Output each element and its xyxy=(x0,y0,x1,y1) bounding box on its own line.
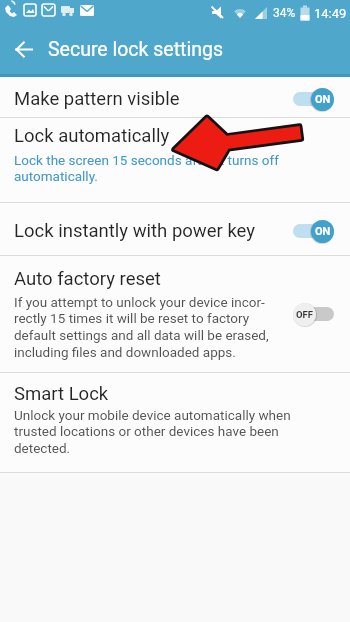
staticText: Auto factory reset xyxy=(14,268,161,290)
staticText: Make pattern visible xyxy=(14,88,180,110)
staticText: Lock automatically xyxy=(14,125,170,147)
staticText: Unlock your mobile device automatically … xyxy=(14,407,291,457)
button[interactable] xyxy=(0,26,48,73)
button[interactable]: Auto factory reset xyxy=(0,256,350,372)
staticText: 34% xyxy=(273,6,296,20)
staticText: Smart Lock xyxy=(14,383,109,405)
button[interactable]: OFF xyxy=(293,301,334,327)
button[interactable]: Make pattern visible xyxy=(0,77,350,117)
button[interactable]: ON xyxy=(293,218,334,244)
button[interactable]: Lock automatically xyxy=(0,118,350,202)
staticText: Secure lock settings xyxy=(48,38,223,61)
staticText: Lock instantly with power key xyxy=(14,220,256,242)
staticText: 14:49 xyxy=(314,6,347,21)
button[interactable]: Lock instantly with power key xyxy=(0,203,350,255)
button[interactable]: Smart Lock xyxy=(0,373,350,472)
button[interactable]: ON xyxy=(293,86,334,112)
staticText: If you attempt to unlock your device inc… xyxy=(14,294,269,361)
staticText: ON xyxy=(315,225,331,238)
staticText: Lock the screen 15 seconds after it turn… xyxy=(14,152,279,185)
staticText: ON xyxy=(315,93,331,106)
staticText: OFF xyxy=(296,309,313,320)
